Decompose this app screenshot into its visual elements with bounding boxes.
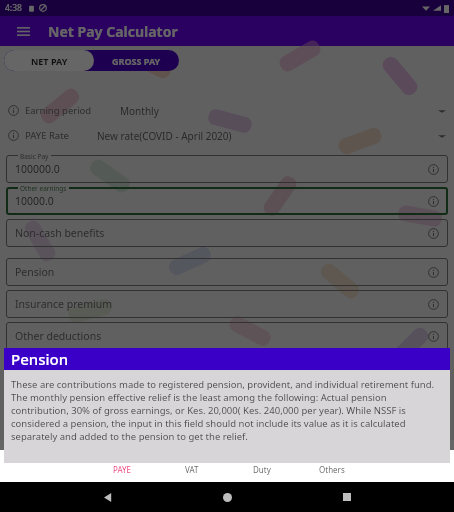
button[interactable]: Earning period	[8, 98, 446, 123]
staticText: These are contributions made to register…	[11, 378, 443, 443]
staticText: VAT	[185, 464, 199, 475]
staticText: New rate(Effective 2014*)	[99, 358, 219, 372]
button[interactable]: 100000.0	[6, 155, 448, 183]
staticText: New rate(COVID - April 2020)	[97, 129, 232, 143]
button[interactable]: Back	[96, 485, 120, 509]
staticText: NSSF Rate	[25, 358, 71, 371]
button[interactable]: 10000.0	[6, 187, 448, 215]
staticText: Non-cash benefits	[15, 226, 105, 240]
staticText: 10000.0	[15, 194, 54, 208]
staticText: Basic Pay	[20, 152, 49, 161]
staticText: Other earnings	[20, 184, 67, 193]
button[interactable]: Other deductions	[6, 322, 448, 350]
button[interactable]: Menu	[13, 21, 33, 41]
staticText: Pension	[11, 349, 69, 369]
staticText: NET PAY	[31, 55, 68, 67]
staticText: Earning period	[25, 104, 92, 117]
staticText: PAYE Rate	[25, 129, 69, 142]
button[interactable]: PAYE Rate	[8, 123, 446, 148]
button[interactable]: GROSS PAY	[4, 50, 179, 71]
button[interactable]: Others	[297, 440, 367, 482]
button[interactable]: Duty	[227, 440, 297, 482]
staticText: Insurance premium	[15, 297, 113, 311]
staticText: Duty	[253, 464, 271, 475]
button[interactable]: Insurance premium	[6, 290, 448, 318]
staticText: Monthly	[120, 104, 159, 118]
button[interactable]: VAT	[157, 440, 227, 482]
button[interactable]: Non-cash benefits	[6, 219, 448, 247]
button[interactable]: Pension	[6, 258, 448, 286]
button[interactable]: PAYE	[87, 440, 157, 482]
button[interactable]: Recents	[335, 485, 359, 509]
staticText: Pension	[15, 265, 55, 279]
staticText: Other deductions	[15, 329, 102, 343]
button[interactable]: NSSF Rate	[8, 352, 446, 377]
staticText: GROSS PAY	[112, 55, 161, 67]
staticText: 4:38	[5, 2, 22, 14]
staticText: Net Pay Calculator	[48, 22, 178, 41]
staticText: PAYE	[113, 464, 132, 475]
staticText: 100000.0	[15, 162, 60, 176]
button[interactable]: NET PAY	[4, 50, 94, 71]
staticText: Others	[319, 464, 345, 475]
button[interactable]: Home	[215, 485, 239, 509]
